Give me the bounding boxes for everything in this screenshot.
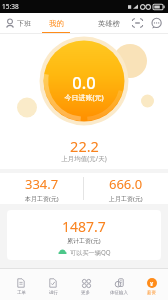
staticText: 英雄榜: [98, 19, 120, 28]
button[interactable]: 334.7: [0, 173, 83, 204]
button[interactable]: [151, 18, 162, 29]
staticText: 334.7: [25, 175, 59, 193]
button[interactable]: ¥: [135, 269, 168, 300]
staticText: 进行: [49, 290, 58, 296]
staticText: 体征输入: [110, 290, 128, 296]
staticText: ¥: [150, 280, 154, 287]
staticText: 今日进账(元): [64, 93, 104, 103]
button[interactable]: 体征输入: [102, 269, 135, 300]
button[interactable]: 英雄榜: [94, 13, 123, 34]
staticText: 累计工资(元): [67, 237, 101, 245]
staticText: 薪资: [147, 290, 156, 296]
staticText: 1487.7: [62, 217, 106, 236]
staticText: 工单: [17, 290, 26, 296]
button[interactable]: 我的: [42, 13, 70, 34]
staticText: 下班: [17, 19, 31, 28]
staticText: 0.0: [72, 71, 96, 93]
button[interactable]: 更多: [69, 269, 102, 300]
staticText: 本月工资(元): [25, 195, 59, 203]
button[interactable]: 1487.7: [7, 210, 161, 260]
staticText: 上月均值(元/天): [61, 154, 107, 163]
staticText: 22.2: [70, 136, 99, 156]
staticText: 666.0: [109, 175, 143, 193]
button[interactable]: 下班: [6, 18, 31, 29]
button[interactable]: 666.0: [84, 173, 168, 204]
staticText: 我的: [49, 19, 64, 28]
staticText: 15:38: [2, 2, 19, 11]
staticText: 更多: [81, 290, 90, 296]
staticText: 上月工资(元): [109, 195, 143, 203]
button[interactable]: [132, 18, 143, 28]
button[interactable]: 工单: [5, 269, 37, 300]
staticText: 可以买一辆QQ: [70, 248, 111, 256]
button[interactable]: 进行: [37, 269, 69, 300]
